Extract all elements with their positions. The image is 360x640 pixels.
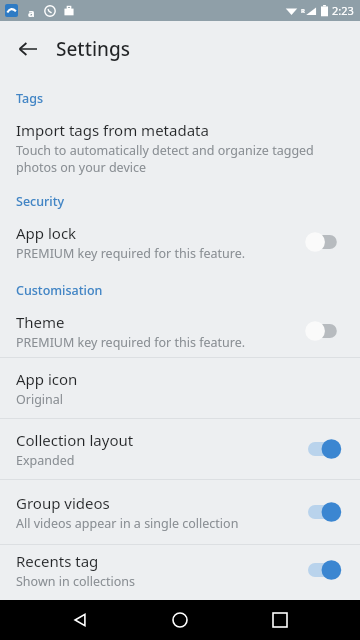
button[interactable]: Collection layout — [0, 419, 360, 479]
button[interactable]: Toggle on — [306, 558, 346, 582]
staticText: App icon — [16, 369, 78, 389]
button[interactable]: Group videos — [0, 480, 360, 544]
staticText: PREMIUM key required for this feature. — [16, 334, 246, 351]
button[interactable]: App icon — [0, 358, 360, 418]
staticText: Customisation — [16, 282, 103, 299]
button[interactable]: Toggle off — [306, 319, 346, 343]
staticText: Group videos — [16, 493, 110, 513]
button[interactable]: Toggle on — [306, 437, 346, 461]
button[interactable]: Toggle on — [306, 500, 346, 524]
staticText: App lock — [16, 223, 77, 243]
staticText: PREMIUM key required for this feature. — [16, 245, 246, 262]
button[interactable]: App lock — [0, 216, 360, 268]
staticText: Touch to automatically detect and organi… — [16, 142, 346, 175]
staticText: Recents tag — [16, 551, 99, 571]
staticText: Settings — [56, 36, 130, 62]
staticText: R — [301, 7, 305, 15]
button[interactable]: Back — [64, 604, 96, 636]
button[interactable]: Import tags from metadata — [0, 113, 360, 181]
button[interactable]: Back — [10, 31, 46, 67]
staticText: Original — [16, 391, 64, 408]
staticText: Collection layout — [16, 430, 134, 450]
staticText: Expanded — [16, 452, 75, 469]
staticText: Import tags from metadata — [16, 120, 209, 140]
button[interactable]: Theme — [0, 305, 360, 357]
button[interactable]: Recents tag — [0, 545, 360, 595]
staticText: a — [28, 5, 35, 17]
staticText: Tags — [16, 90, 44, 107]
staticText: Shown in collections — [16, 573, 135, 590]
button[interactable]: Recents — [264, 604, 296, 636]
staticText: Security — [16, 193, 65, 210]
staticText: Theme — [16, 312, 65, 332]
button[interactable]: Home — [164, 604, 196, 636]
staticText: All videos appear in a single collection — [16, 515, 239, 532]
staticText: 2:23 — [332, 3, 354, 18]
button[interactable]: Toggle off — [306, 230, 346, 254]
